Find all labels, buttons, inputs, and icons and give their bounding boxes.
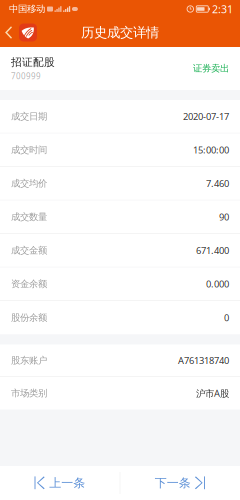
staticText: 成交日期 (11, 111, 47, 122)
staticText: 成交数量 (11, 211, 47, 223)
staticText: 历史成交详情 (81, 24, 159, 41)
staticText: 成交时间 (11, 144, 47, 156)
staticText: 股份余额 (11, 312, 47, 323)
button[interactable]: 下一条 (120, 466, 240, 500)
staticText: A761318740 (178, 354, 229, 367)
staticText: 下一条 (155, 476, 191, 490)
staticText: 700999 (11, 71, 41, 81)
staticText: 2020-07-17 (183, 110, 229, 123)
staticText: 7.460 (206, 177, 229, 190)
staticText: 671.400 (196, 244, 229, 257)
button[interactable]: Home (19, 23, 37, 41)
staticText: 证券卖出 (193, 63, 229, 74)
staticText: 0 (224, 312, 229, 324)
staticText: 股东账户 (11, 355, 47, 366)
staticText: 2:31 (212, 2, 233, 16)
staticText: 资金余额 (11, 278, 47, 290)
staticText: 上一条 (49, 476, 85, 490)
staticText: 成交均价 (11, 178, 47, 189)
staticText: 招证配股 (11, 56, 55, 69)
staticText: 90 (219, 211, 229, 223)
staticText: 成交金额 (11, 245, 47, 256)
staticText: 15:00:00 (193, 144, 229, 156)
button[interactable]: 上一条 (0, 466, 120, 500)
staticText: 中国移动 (9, 3, 45, 15)
button[interactable]: Back (3, 22, 14, 42)
staticText: 市场类别 (11, 387, 47, 399)
staticText: 0.000 (206, 278, 229, 290)
staticText: 沪市A股 (196, 387, 229, 399)
